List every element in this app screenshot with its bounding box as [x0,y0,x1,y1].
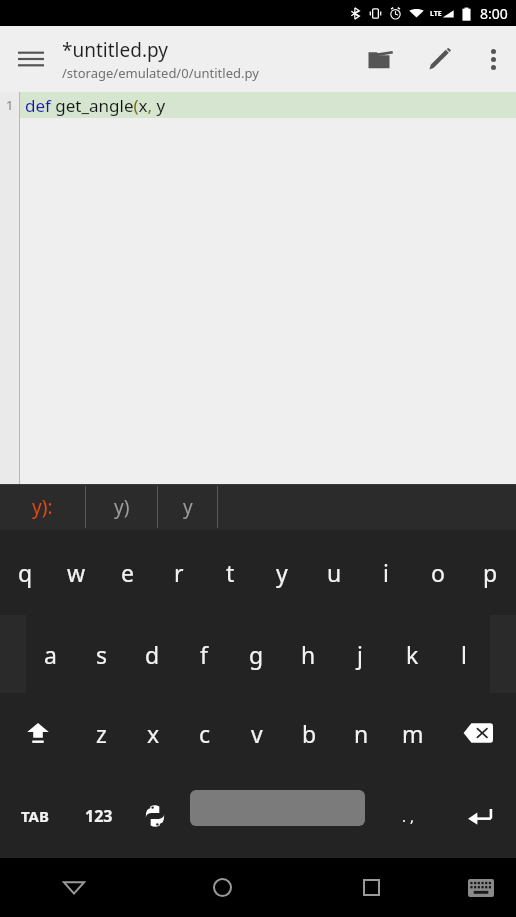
staticText: c [199,718,211,749]
staticText: *untitled.py [62,37,168,63]
button[interactable]: Shift [0,693,76,773]
button[interactable]: 123 [69,773,128,858]
button[interactable]: . , [372,773,444,858]
button[interactable]: j [334,615,386,693]
button[interactable]: s [76,615,127,693]
staticText: u [327,557,342,588]
staticText: 8:00 [480,4,508,23]
button[interactable]: q [0,530,51,615]
button[interactable]: y): [0,484,85,530]
button[interactable]: Enter [444,773,516,858]
staticText: b [302,718,317,749]
button[interactable]: g [230,615,282,693]
button[interactable]: o [412,530,464,615]
staticText: w [67,557,86,588]
button[interactable]: f [178,615,230,693]
button[interactable]: i [360,530,412,615]
staticText: y): [32,494,53,520]
staticText: g [249,639,264,670]
button[interactable]: Switch keyboard [446,858,516,917]
button[interactable]: Back [0,858,148,917]
button[interactable]: y [158,484,217,530]
staticText: k [406,639,419,670]
staticText: y [183,494,193,520]
button[interactable]: Backspace [439,693,516,773]
button[interactable]: m [387,693,439,773]
staticText: LTE [430,9,442,19]
staticText: s [96,639,108,670]
button[interactable]: c [179,693,231,773]
button[interactable]: More options [470,26,516,92]
button[interactable]: d [127,615,178,693]
button[interactable]: x [127,693,179,773]
button[interactable]: l [438,615,490,693]
staticText: q [18,557,33,588]
staticText: v [251,718,263,749]
staticText: t [226,557,235,588]
button[interactable]: w [51,530,102,615]
staticText: o [431,557,445,588]
staticText: f [200,639,208,670]
button[interactable]: a [25,615,76,693]
staticText: /storage/emulated/0/untitled.py [62,64,259,82]
staticText: y [276,557,288,588]
staticText: h [301,639,316,670]
button[interactable]: v [231,693,283,773]
button[interactable]: Home [148,858,297,917]
staticText: a [44,639,57,670]
button[interactable]: n [335,693,387,773]
button[interactable]: u [308,530,360,615]
staticText: z [96,718,107,749]
button[interactable]: y) [86,484,157,530]
button[interactable]: p [464,530,516,615]
button[interactable]: z [76,693,127,773]
staticText: d [145,639,160,670]
staticText: n [354,718,369,749]
button[interactable]: Open file [350,26,410,92]
button[interactable]: Edit [410,26,470,92]
button[interactable]: h [282,615,334,693]
staticText: j [357,639,363,670]
staticText: TAB [21,806,49,826]
staticText: . , [402,806,414,826]
button[interactable]: b [283,693,335,773]
button[interactable]: t [204,530,256,615]
button[interactable]: e [102,530,153,615]
button[interactable]: r [153,530,204,615]
button[interactable]: y [256,530,308,615]
staticText: 123 [85,805,113,827]
staticText: y) [114,494,130,520]
staticText: r [174,557,184,588]
staticText: e [121,557,134,588]
staticText: i [383,557,389,588]
staticText: l [461,639,467,670]
button[interactable]: Python symbols [128,773,182,858]
button[interactable]: Navigation menu [0,26,62,92]
staticText: x [147,718,160,749]
staticText: m [402,718,424,749]
staticText: def get_angle(x, y [25,94,166,117]
button[interactable]: Space [182,773,372,858]
staticText: 1 [6,96,14,114]
button[interactable]: TAB [0,773,69,858]
button[interactable]: Recent apps [297,858,446,917]
staticText: p [483,557,498,588]
button[interactable]: k [386,615,438,693]
